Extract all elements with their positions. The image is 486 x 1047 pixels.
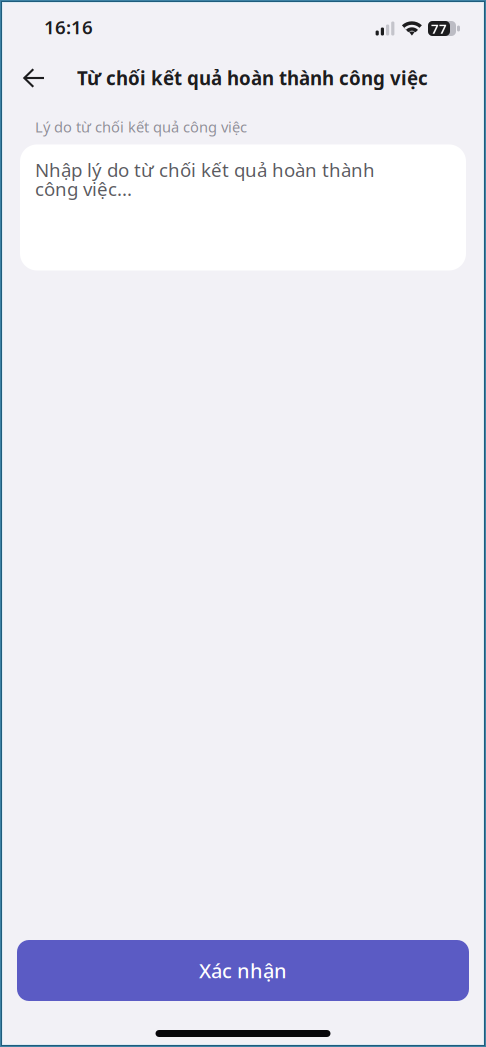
staticText: Nhập lý do từ chối kết quả hoàn thành (35, 157, 375, 182)
button[interactable]: Xác nhận (17, 940, 469, 1001)
staticText: Từ chối kết quả hoàn thành công việc (77, 66, 428, 90)
staticText: công việc... (35, 176, 132, 201)
staticText: 77 (431, 20, 447, 37)
staticText: Xác nhận (199, 957, 287, 984)
staticText: 16:16 (44, 15, 93, 39)
button[interactable]: Back (11, 58, 57, 98)
staticText: Lý do từ chối kết quả công việc (35, 117, 247, 136)
